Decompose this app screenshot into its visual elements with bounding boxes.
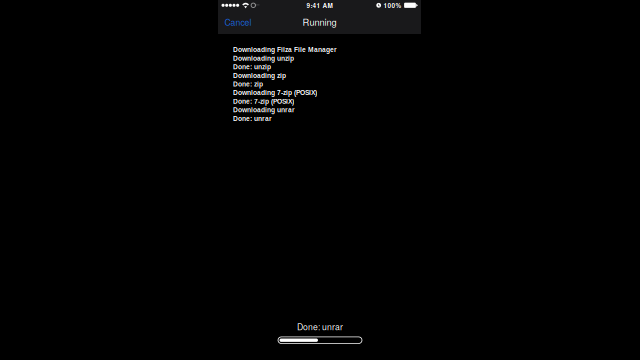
staticText: Done: unzip [233, 63, 271, 71]
staticText: Downloading 7-zip (POSIX) [233, 89, 317, 96]
staticText: Done: unrar [233, 115, 272, 122]
staticText: Done: 7-zip (POSIX) [233, 98, 294, 105]
staticText: Running [302, 15, 336, 28]
staticText: Downloading unzip [233, 55, 294, 62]
staticText: 100% [384, 1, 402, 10]
staticText: Done: zip [233, 80, 263, 88]
button[interactable]: Cancel [221, 12, 254, 32]
staticText: Downloading unrar [233, 106, 295, 114]
staticText: Downloading zip [233, 72, 286, 79]
staticText: Cancel [224, 16, 251, 28]
staticText: Done: unrar [297, 320, 343, 333]
staticText: 9:41 AM [306, 1, 332, 10]
staticText: Downloading Filza File Manager [233, 46, 337, 53]
